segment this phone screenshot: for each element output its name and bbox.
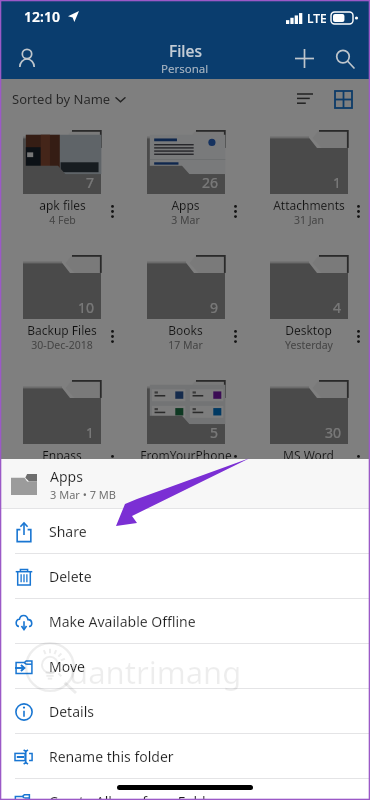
button[interactable]: More options xyxy=(100,196,124,226)
staticText: 12:10 xyxy=(24,7,60,26)
staticText: Enpass xyxy=(42,447,82,463)
button[interactable]: Account xyxy=(10,41,44,75)
staticText: Apps xyxy=(171,197,200,213)
staticText: uantrimang xyxy=(69,651,242,693)
button[interactable]: More options xyxy=(100,446,124,476)
staticText: Create Album from Folder xyxy=(49,792,220,800)
button[interactable]: More options xyxy=(100,321,124,351)
button[interactable]: More options xyxy=(223,196,247,226)
staticText: 1 xyxy=(333,173,342,192)
staticText: 5 xyxy=(210,423,219,442)
staticText: Yesterday xyxy=(285,338,333,352)
button[interactable]: Search xyxy=(324,38,364,78)
staticText: Move xyxy=(49,657,85,676)
staticText: 31 Jan xyxy=(294,213,324,227)
staticText: 30-Dec-2018 xyxy=(31,338,93,352)
button[interactable]: More options xyxy=(346,321,370,351)
staticText: apk files xyxy=(39,197,86,213)
staticText: Desktop xyxy=(285,322,332,338)
staticText: LTE xyxy=(307,10,327,26)
staticText: Apps xyxy=(50,467,83,486)
staticText: FromYourPhone xyxy=(140,447,232,463)
button[interactable]: Share xyxy=(0,509,370,554)
staticText: 17 Mar xyxy=(168,338,203,352)
staticText: 4 Feb xyxy=(49,213,76,227)
button[interactable]: 26 xyxy=(124,119,247,244)
button[interactable]: Move xyxy=(0,644,370,689)
button[interactable]: More options xyxy=(223,321,247,351)
button[interactable]: 1 xyxy=(247,119,370,244)
staticText: Personal xyxy=(161,61,209,77)
button[interactable]: 4 xyxy=(247,244,370,369)
staticText: Backup Files xyxy=(27,322,97,338)
staticText: Files xyxy=(169,40,202,61)
staticText: 1 xyxy=(86,423,95,442)
staticText: Rename this folder xyxy=(49,747,174,766)
button[interactable]: Rename this folder xyxy=(0,734,370,779)
staticText: Make Available Offline xyxy=(49,612,196,631)
staticText: 3 Mar • 7 MB xyxy=(50,487,116,502)
staticText: Delete xyxy=(49,567,92,586)
staticText: 3 Mar xyxy=(171,213,200,227)
button[interactable]: Delete xyxy=(0,554,370,599)
staticText: Details xyxy=(49,702,94,721)
staticText: 30 xyxy=(325,423,342,442)
button[interactable]: 7 xyxy=(0,119,124,244)
staticText: Share xyxy=(49,522,87,541)
staticText: Books xyxy=(168,322,203,338)
button[interactable]: 10 xyxy=(0,244,124,369)
button[interactable]: Details xyxy=(0,689,370,734)
button[interactable]: Add xyxy=(284,38,324,78)
button[interactable]: List view xyxy=(286,80,324,118)
staticText: 7 xyxy=(86,173,95,192)
staticText: 10 xyxy=(78,298,95,317)
button[interactable]: 30 xyxy=(247,369,370,494)
button[interactable]: 1 xyxy=(0,369,124,494)
button[interactable]: 9 xyxy=(124,244,247,369)
button[interactable]: Create Album from Folder xyxy=(0,779,370,800)
button[interactable]: More options xyxy=(223,446,247,476)
button[interactable]: More options xyxy=(346,196,370,226)
button[interactable]: Grid view xyxy=(324,80,362,118)
staticText: Attachments xyxy=(273,197,345,213)
button[interactable]: Sorted by Name xyxy=(12,90,125,108)
button[interactable]: Make Available Offline xyxy=(0,599,370,644)
button[interactable]: More options xyxy=(346,446,370,476)
button[interactable]: 5 xyxy=(124,369,247,494)
staticText: MS Word xyxy=(283,447,334,463)
staticText: 4 xyxy=(333,298,342,317)
staticText: 26 xyxy=(202,173,219,192)
staticText: Sorted by Name xyxy=(12,90,111,108)
staticText: 9 xyxy=(210,298,219,317)
